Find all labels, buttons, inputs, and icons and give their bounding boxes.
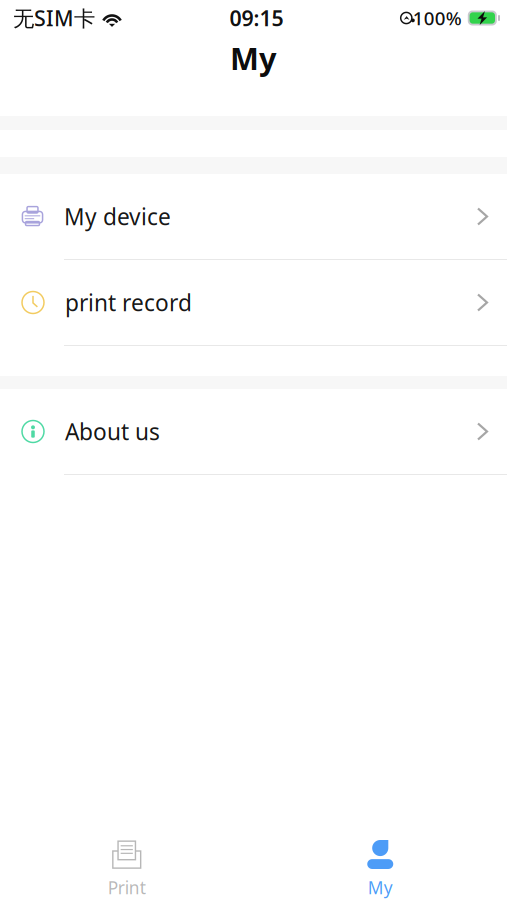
staticText: My device [64, 201, 171, 231]
button[interactable]: print record [0, 260, 507, 346]
staticText: 09:15 [229, 4, 283, 32]
button[interactable]: About us [0, 389, 507, 475]
staticText: print record [65, 287, 192, 317]
staticText: 100% [413, 6, 462, 30]
staticText: My [368, 876, 393, 899]
button[interactable]: My device [0, 174, 507, 260]
staticText: About us [65, 416, 160, 446]
staticText: 无SIM卡 [13, 4, 95, 32]
button[interactable]: Print [0, 840, 253, 899]
staticText: Print [108, 876, 146, 899]
staticText: My [230, 38, 277, 78]
button[interactable]: My [253, 840, 507, 899]
